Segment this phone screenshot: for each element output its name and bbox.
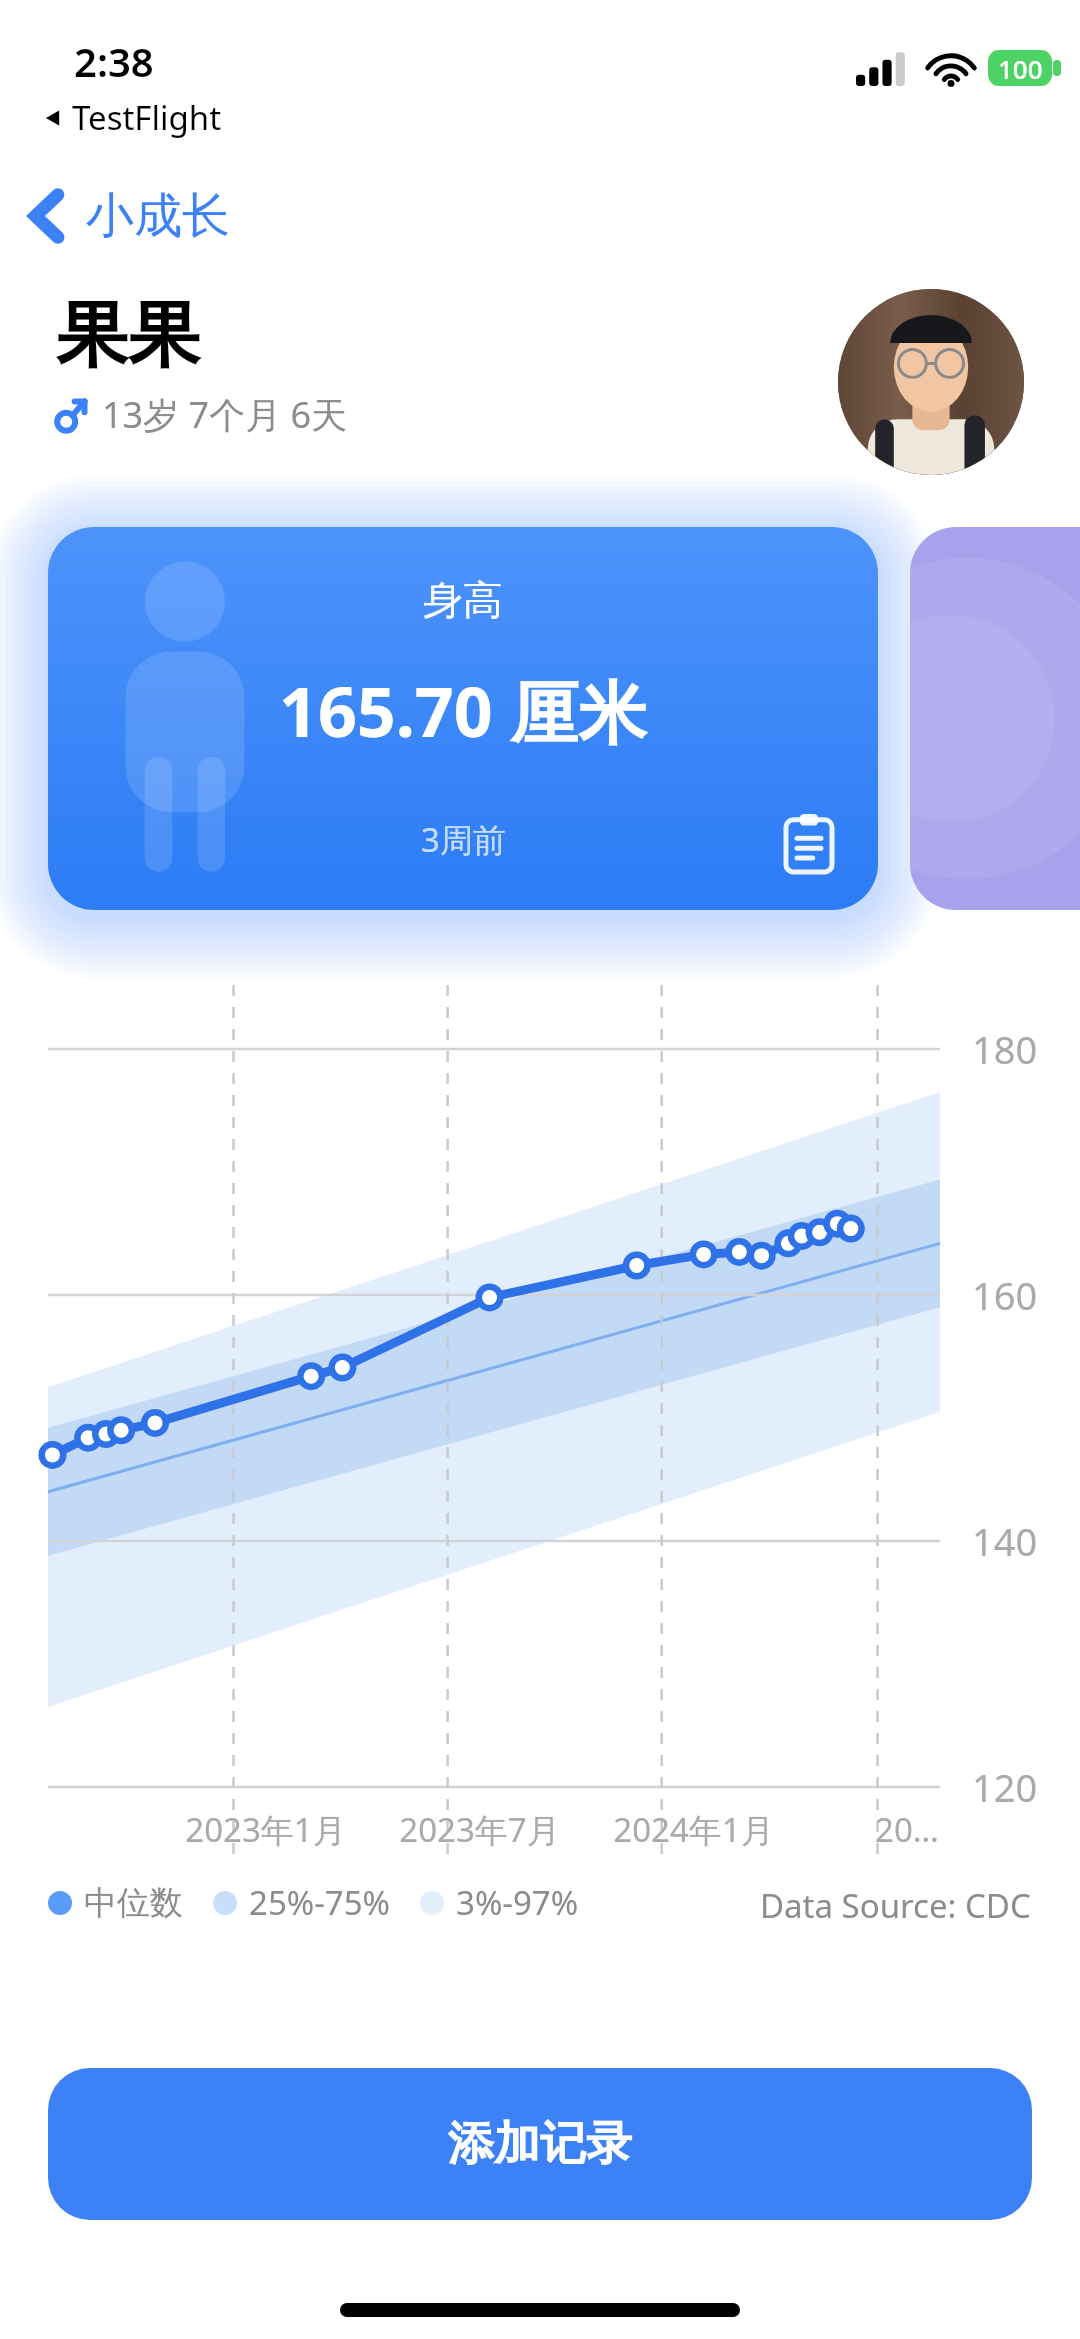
staticText: 3%-97% [456, 1880, 579, 1925]
staticText: 添加记录 [448, 2115, 632, 2173]
button[interactable]: 身高 [48, 527, 878, 910]
staticText: 果果 [56, 291, 200, 382]
staticText: 120 [972, 1761, 1038, 1813]
button[interactable] [910, 527, 1080, 910]
staticText: 身高 [423, 575, 503, 625]
staticText: 3周前 [421, 817, 506, 862]
staticText: Data Source: CDC [760, 1883, 1031, 1928]
button[interactable]: 添加记录 [48, 2068, 1032, 2220]
staticText: 20… [875, 1807, 939, 1852]
staticText: 160 [972, 1269, 1038, 1321]
staticText: 100 [998, 51, 1043, 86]
staticText: 2:38 [74, 34, 154, 88]
other: Records [786, 814, 832, 872]
staticText: 2023年7月 [399, 1807, 560, 1852]
staticText: 140 [972, 1515, 1038, 1567]
button[interactable]: 小成长 [18, 166, 242, 266]
staticText: 180 [972, 1023, 1038, 1075]
staticText: 25%-75% [249, 1880, 390, 1925]
staticText: 2024年1月 [613, 1807, 774, 1852]
staticText: 2023年1月 [185, 1807, 346, 1852]
staticText: 中位数 [84, 1882, 183, 1924]
staticText: 小成长 [86, 186, 230, 246]
button[interactable]: Profile photo [838, 289, 1024, 475]
staticText: 13岁 7个月 6天 [102, 390, 348, 439]
staticText: TestFlight [72, 95, 222, 140]
staticText: 165.70 厘米 [279, 664, 647, 757]
